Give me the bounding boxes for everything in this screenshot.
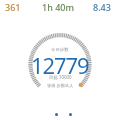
other: Step progress ring [0, 0, 120, 120]
staticText: 1h 40m [42, 1, 74, 13]
button[interactable]: 1h 40m [42, 1, 74, 13]
staticText: 8.43 [93, 1, 111, 13]
staticText: 目标 10000 [49, 74, 72, 80]
button[interactable]: Page indicator [55, 113, 72, 116]
staticText: 今日步数 [51, 47, 69, 53]
button[interactable]: 361 [5, 1, 21, 13]
staticText: 等级 步数达人 [47, 83, 74, 89]
button[interactable]: 8.43 [93, 1, 111, 13]
staticText: 12779 [31, 50, 89, 80]
staticText: 361 [5, 1, 21, 13]
button[interactable]: 今日步数 [0, 0, 120, 120]
